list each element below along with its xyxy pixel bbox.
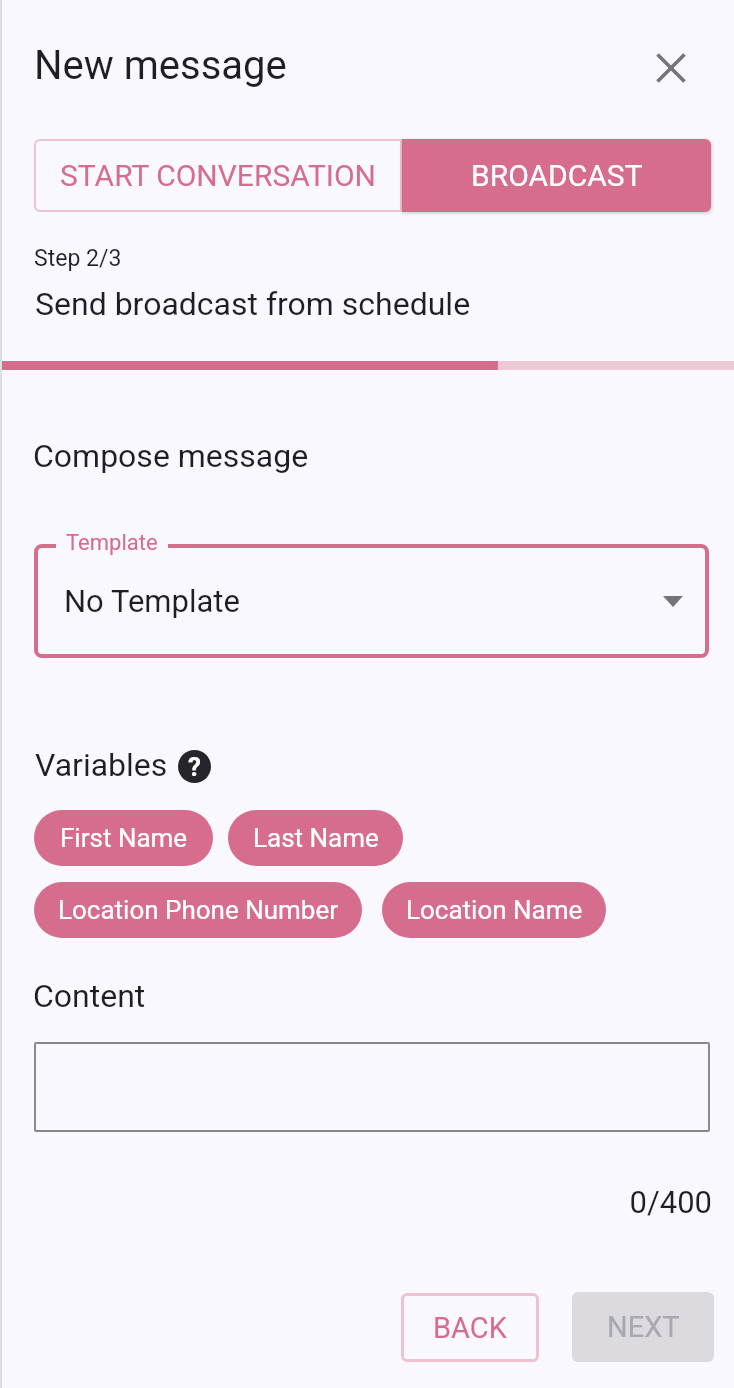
staticText: No Template (64, 583, 240, 619)
button[interactable]: START CONVERSATION (34, 139, 402, 212)
button[interactable]: Last Name (228, 810, 403, 866)
button[interactable]: Close (644, 41, 697, 94)
button[interactable]: NEXT (572, 1292, 714, 1362)
button[interactable]: No Template (34, 544, 709, 658)
staticText: Location Phone Number (58, 895, 339, 925)
button[interactable]: BACK (401, 1293, 539, 1362)
button[interactable]: Help (178, 750, 211, 783)
button[interactable]: Location Name (382, 882, 606, 938)
staticText: 0/400 (2, 1184, 712, 1220)
staticText: First Name (60, 823, 188, 853)
staticText: ? (188, 752, 201, 782)
staticText: Template (66, 530, 158, 556)
button[interactable] (34, 1042, 710, 1132)
staticText: Content (33, 977, 146, 1015)
staticText: BROADCAST (471, 158, 643, 193)
staticText: START CONVERSATION (60, 158, 376, 193)
staticText: Location Name (406, 895, 583, 925)
staticText: Last Name (253, 823, 379, 853)
button[interactable]: BROADCAST (402, 139, 711, 212)
staticText: Step 2/3 (34, 245, 122, 272)
staticText: BACK (433, 1311, 507, 1345)
staticText: NEXT (607, 1310, 680, 1344)
staticText: New message (34, 42, 287, 89)
button[interactable]: First Name (34, 810, 213, 866)
staticText: Compose message (33, 437, 309, 475)
staticText: Send broadcast from schedule (35, 285, 471, 323)
staticText: Variables (35, 746, 168, 784)
button[interactable]: Location Phone Number (34, 882, 362, 938)
